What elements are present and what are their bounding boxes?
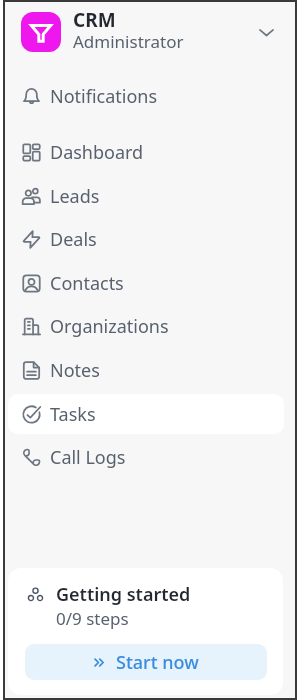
button[interactable]: Leads	[8, 176, 284, 216]
staticText: Organizations	[50, 314, 169, 339]
button[interactable]: Organizations	[8, 306, 284, 346]
staticText: Tasks	[50, 402, 96, 427]
staticText: Start now	[116, 650, 199, 675]
staticText: 0/9 steps	[56, 607, 129, 630]
button[interactable]: Deals	[8, 219, 284, 259]
button[interactable]: Notifications	[8, 76, 284, 116]
button[interactable]: Start now	[25, 644, 267, 680]
button[interactable]: Expand account menu	[249, 15, 283, 49]
staticText: Contacts	[50, 271, 124, 296]
staticText: Notifications	[50, 84, 158, 109]
button[interactable]: Contacts	[8, 263, 284, 303]
button[interactable]: CRM	[5, 2, 295, 61]
staticText: Getting started	[56, 582, 191, 607]
button[interactable]: Tasks	[8, 394, 284, 434]
button[interactable]: Notes	[8, 350, 284, 390]
staticText: Leads	[50, 184, 100, 209]
button[interactable]: Call Logs	[8, 437, 284, 477]
staticText: Notes	[50, 358, 100, 383]
staticText: Deals	[50, 227, 97, 252]
staticText: Administrator	[73, 30, 184, 53]
button[interactable]: Dashboard	[8, 132, 284, 172]
staticText: CRM	[73, 7, 116, 33]
staticText: Call Logs	[50, 445, 126, 470]
staticText: Dashboard	[50, 140, 144, 165]
